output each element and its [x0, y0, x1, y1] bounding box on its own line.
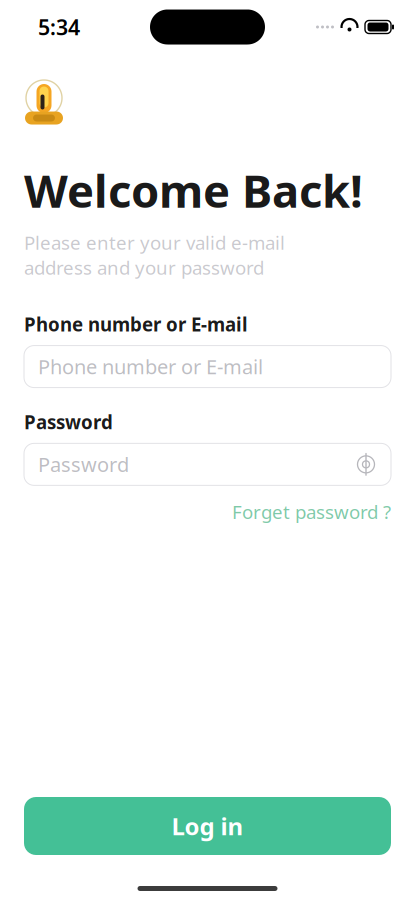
button[interactable]: Password [24, 443, 391, 485]
button[interactable]: Phone number or E-mail [24, 346, 391, 388]
staticText: Please enter your valid e-mail address a… [24, 230, 285, 280]
staticText: Password [24, 410, 113, 434]
staticText: Phone number or E-mail [24, 312, 248, 337]
button[interactable]: Forget password ? [232, 493, 391, 530]
button[interactable]: Log in [24, 797, 391, 855]
staticText: Welcome Back! [24, 160, 363, 220]
staticText: Password [38, 451, 129, 478]
staticText: Phone number or E-mail [38, 353, 263, 380]
staticText: Forget password ? [232, 499, 391, 524]
staticText: Log in [171, 810, 243, 842]
staticText: 5:34 [38, 13, 80, 41]
